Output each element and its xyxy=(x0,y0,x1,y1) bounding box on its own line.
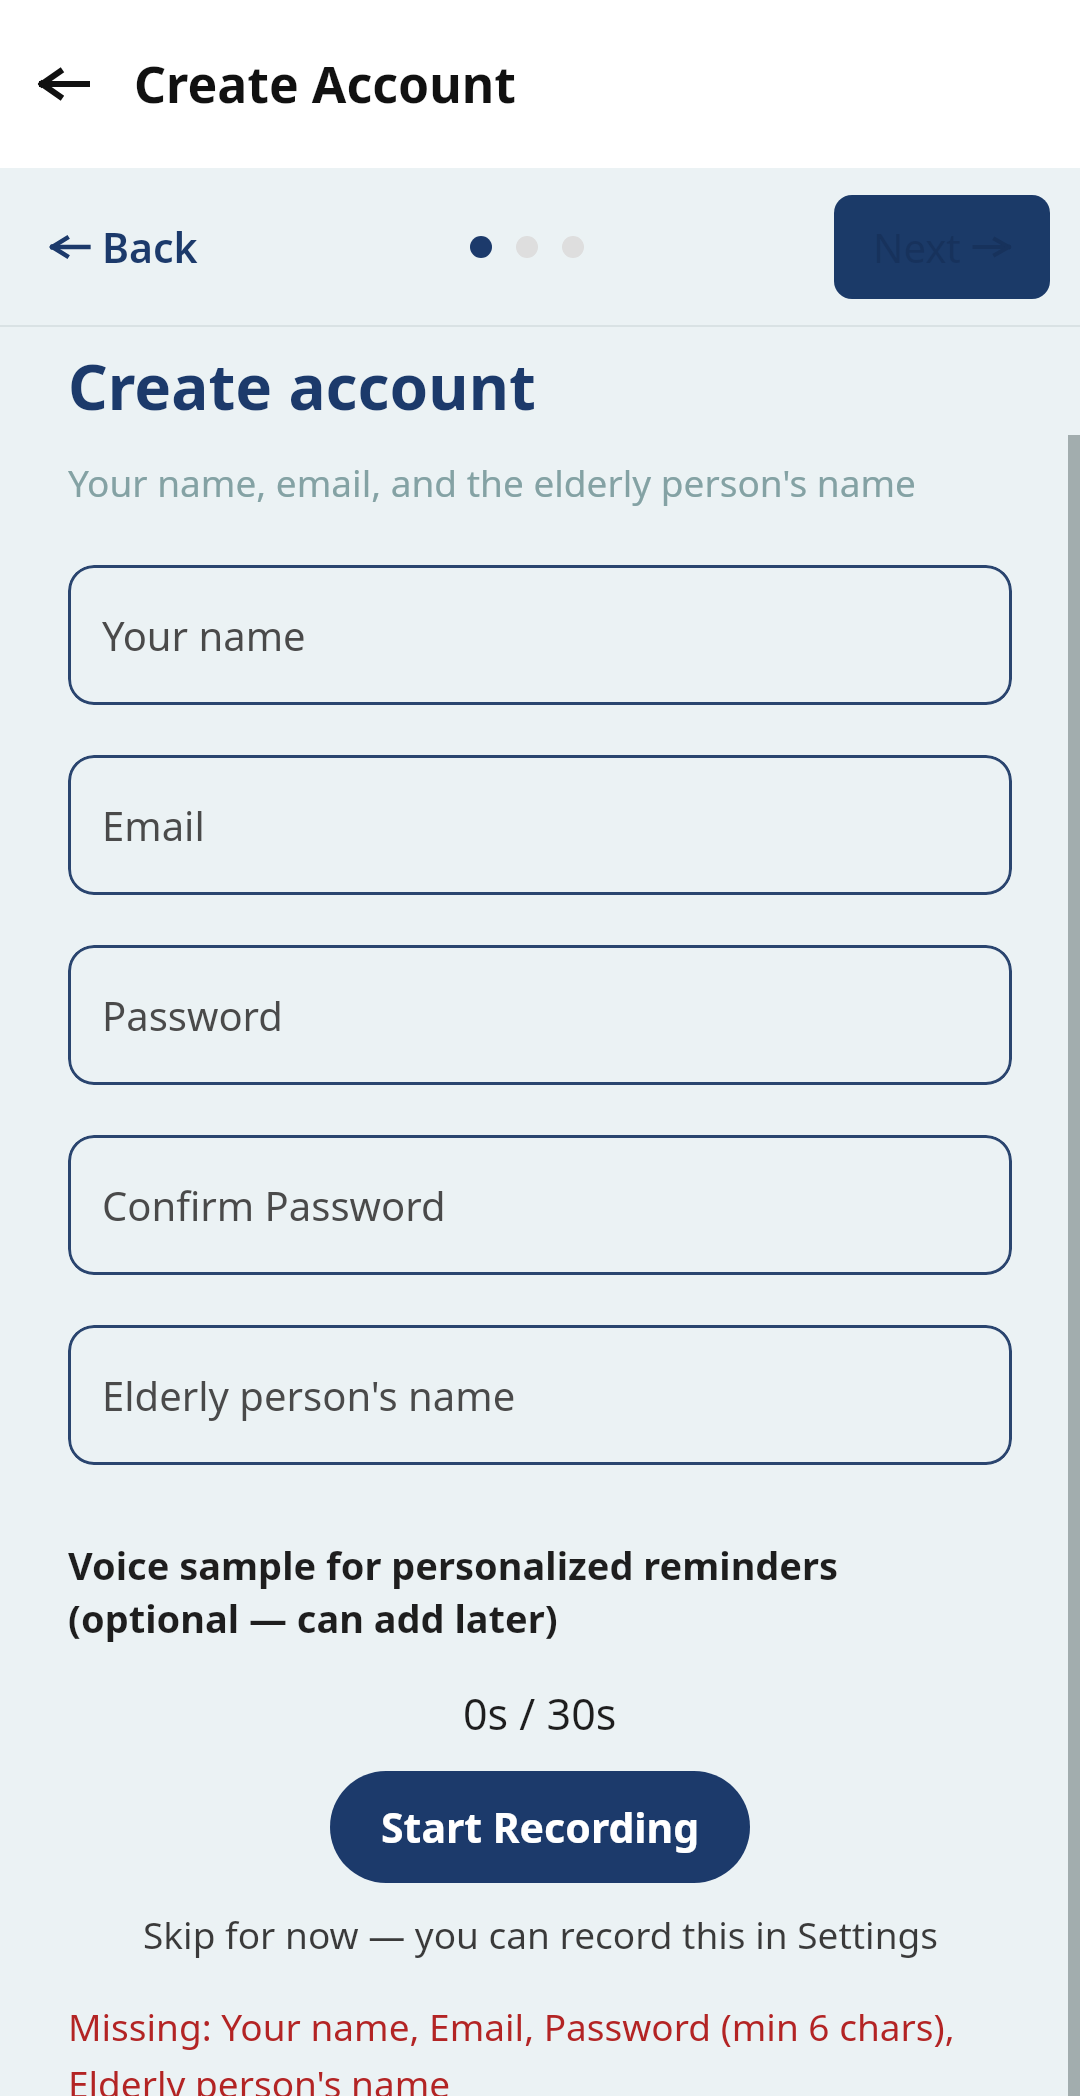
staticText: Back xyxy=(102,219,198,275)
button[interactable]: Back xyxy=(26,46,102,122)
staticText: Create account xyxy=(68,344,536,428)
staticText: Create Account xyxy=(134,50,516,118)
staticText: Confirm Password xyxy=(102,1178,446,1232)
button[interactable]: Confirm Password xyxy=(68,1135,1012,1275)
button[interactable]: Email xyxy=(68,755,1012,895)
button[interactable]: Start Recording xyxy=(330,1771,750,1883)
button[interactable]: Your name xyxy=(68,565,1012,705)
button[interactable]: Back xyxy=(38,207,210,287)
staticText: Start Recording xyxy=(381,1799,700,1855)
button[interactable]: Password xyxy=(68,945,1012,1085)
staticText: Password xyxy=(102,988,283,1042)
button[interactable]: Next xyxy=(834,195,1050,299)
staticText: Your name, email, and the elderly person… xyxy=(68,457,916,507)
staticText: 0s / 30s xyxy=(463,1684,617,1743)
staticText: Next xyxy=(873,220,961,274)
staticText: Elderly person's name xyxy=(102,1368,516,1422)
button[interactable]: Elderly person's name xyxy=(68,1325,1012,1465)
staticText: Your name xyxy=(102,608,306,662)
staticText: Voice sample for personalized reminders … xyxy=(68,1539,1012,1644)
staticText: Skip for now — you can record this in Se… xyxy=(143,1909,938,1959)
staticText: Missing: Your name, Email, Password (min… xyxy=(68,2001,1012,2096)
staticText: Email xyxy=(102,798,205,852)
